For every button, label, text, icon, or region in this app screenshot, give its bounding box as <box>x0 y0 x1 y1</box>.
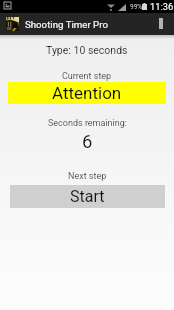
button[interactable]: More options <box>149 13 172 35</box>
staticText: 6 <box>82 131 93 153</box>
staticText: Type: 10 seconds <box>46 44 128 56</box>
staticText: Next step <box>68 171 107 182</box>
staticText: Current step <box>62 71 112 82</box>
staticText: Start <box>70 187 105 206</box>
staticText: Attention <box>52 83 122 103</box>
staticText: Shooting Timer Pro <box>25 19 108 30</box>
staticText: 99% <box>130 3 143 11</box>
staticText: Seconds remaining: <box>48 118 127 129</box>
staticText: 11:36 <box>150 1 174 12</box>
button[interactable]: Start <box>10 185 165 208</box>
